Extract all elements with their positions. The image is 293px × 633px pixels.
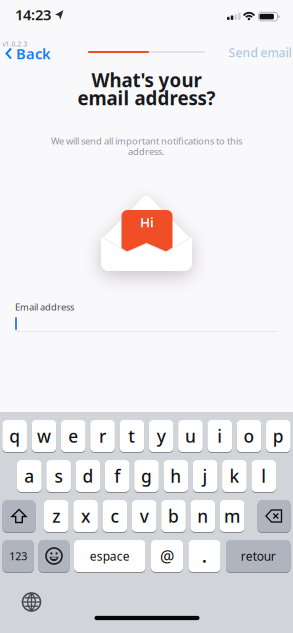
staticText: 14:23	[15, 5, 51, 24]
button[interactable]: m	[220, 500, 244, 532]
staticText: 123	[9, 549, 27, 563]
staticText: t	[128, 424, 135, 447]
staticText: e	[68, 424, 78, 447]
staticText: g	[141, 464, 152, 487]
button[interactable]: r	[90, 420, 115, 452]
button[interactable]: b	[161, 500, 186, 532]
staticText: v1.0.2.3	[2, 40, 27, 48]
button[interactable]: p	[266, 420, 291, 452]
button[interactable]: .	[188, 540, 220, 572]
button[interactable]: c	[103, 500, 127, 532]
staticText: address.	[128, 145, 165, 158]
staticText: z	[52, 504, 60, 527]
button[interactable]: k	[222, 460, 247, 492]
button[interactable]: Send email	[228, 44, 291, 60]
staticText: k	[229, 464, 239, 487]
staticText: Back	[16, 44, 51, 63]
button[interactable]: Next keyboard	[21, 592, 41, 612]
button[interactable]: retour	[226, 540, 290, 572]
button[interactable]: n	[190, 500, 215, 532]
staticText: m	[224, 504, 240, 527]
button[interactable]: x	[73, 500, 98, 532]
button[interactable]: y	[149, 420, 173, 452]
staticText: We will send all important notifications…	[51, 135, 242, 147]
button[interactable]: j	[193, 460, 217, 492]
staticText: h	[170, 464, 181, 487]
staticText: Email address	[15, 301, 74, 313]
button[interactable]: s	[46, 460, 71, 492]
staticText: c	[110, 504, 119, 527]
button[interactable]: u	[178, 420, 203, 452]
staticText: f	[114, 464, 120, 487]
button[interactable]: t	[119, 420, 144, 452]
button[interactable]: i	[207, 420, 232, 452]
staticText: p	[273, 424, 284, 447]
staticText: Hi	[140, 213, 154, 231]
button[interactable]: espace	[74, 540, 145, 572]
staticText: i	[217, 424, 222, 447]
staticText: u	[185, 424, 196, 447]
staticText: Send email	[228, 44, 291, 60]
button[interactable]: e	[61, 420, 86, 452]
button[interactable]: v	[132, 500, 156, 532]
button[interactable]: f	[105, 460, 129, 492]
staticText: o	[244, 424, 255, 447]
staticText: b	[168, 504, 179, 527]
button[interactable]: q	[2, 420, 27, 452]
button[interactable]: o	[237, 420, 261, 452]
staticText: .	[202, 544, 207, 567]
button[interactable]: l	[251, 460, 276, 492]
staticText: @	[160, 545, 174, 567]
staticText: l	[261, 464, 266, 487]
staticText: w	[37, 424, 51, 447]
staticText: email address?	[77, 86, 215, 110]
button[interactable]: w	[32, 420, 56, 452]
staticText: r	[99, 424, 106, 447]
button[interactable]: Delete	[257, 500, 290, 532]
button[interactable]: Email address	[0, 296, 293, 338]
button[interactable]: a	[17, 460, 42, 492]
button[interactable]: Emoji	[38, 540, 69, 572]
button[interactable]: Numbers	[2, 540, 34, 572]
staticText: x	[81, 504, 90, 527]
staticText: v	[140, 504, 149, 527]
staticText: espace	[90, 548, 130, 564]
button[interactable]: d	[76, 460, 100, 492]
staticText: n	[197, 504, 208, 527]
staticText: d	[82, 464, 93, 487]
staticText: What's your	[91, 68, 201, 92]
button[interactable]: @	[151, 540, 183, 572]
button[interactable]: Shift	[2, 500, 35, 532]
staticText: j	[203, 464, 208, 487]
staticText: retour	[241, 548, 276, 564]
staticText: s	[55, 464, 63, 487]
staticText: q	[9, 424, 20, 447]
staticText: a	[24, 464, 34, 487]
staticText: y	[157, 424, 166, 447]
button[interactable]: g	[134, 460, 159, 492]
button[interactable]: h	[163, 460, 188, 492]
button[interactable]: Back	[5, 44, 51, 63]
button[interactable]: z	[44, 500, 69, 532]
